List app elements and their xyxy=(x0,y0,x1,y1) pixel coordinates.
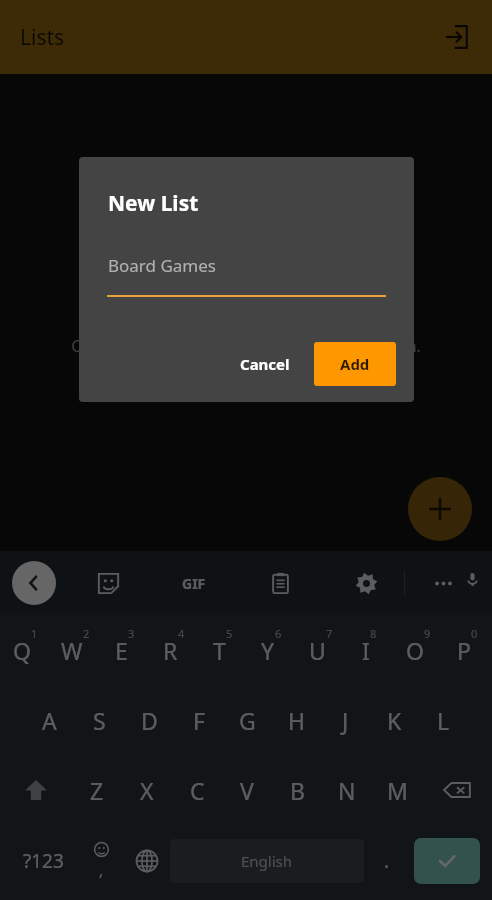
staticText: . xyxy=(384,848,390,874)
button[interactable]: G xyxy=(223,685,272,755)
staticText: E xyxy=(115,635,128,666)
button[interactable]: More options xyxy=(421,561,465,605)
staticText: Q xyxy=(13,635,31,666)
staticText: Y xyxy=(261,635,275,666)
button[interactable]: E xyxy=(100,615,149,685)
button[interactable]: T xyxy=(198,615,247,685)
staticText: C xyxy=(190,775,205,806)
button[interactable]: Enter xyxy=(414,838,480,884)
button[interactable]: Change language xyxy=(124,825,170,897)
staticText: 1 xyxy=(31,626,38,641)
staticText: D xyxy=(141,705,158,736)
staticText: P xyxy=(457,635,471,666)
button[interactable]: C xyxy=(172,755,222,825)
button[interactable]: O xyxy=(394,615,443,685)
button[interactable]: J xyxy=(321,685,370,755)
staticText: Z xyxy=(90,775,104,806)
button[interactable]: A xyxy=(24,685,74,755)
staticText: Board Games xyxy=(108,254,216,277)
button[interactable]: Z xyxy=(71,755,122,825)
button[interactable]: Q xyxy=(0,615,50,685)
staticText: English xyxy=(241,851,293,871)
staticText: 9 xyxy=(424,626,431,641)
staticText: Add xyxy=(340,354,370,374)
staticText: H xyxy=(288,705,306,736)
staticText: ?123 xyxy=(23,848,64,874)
staticText: T xyxy=(213,635,226,666)
button[interactable]: Clipboard xyxy=(258,561,302,605)
staticText: W xyxy=(61,635,83,666)
staticText: N xyxy=(338,775,356,806)
staticText: R xyxy=(163,635,178,666)
button[interactable]: L xyxy=(419,685,468,755)
button[interactable]: Sign out xyxy=(434,15,478,59)
staticText: , xyxy=(99,860,104,880)
staticText: GIF xyxy=(182,574,206,593)
staticText: V xyxy=(240,775,254,806)
button[interactable]: H xyxy=(272,685,321,755)
button[interactable]: I xyxy=(345,615,394,685)
staticText: 2 xyxy=(83,626,90,641)
button[interactable]: W xyxy=(50,615,100,685)
button[interactable]: Emoji xyxy=(78,825,124,897)
staticText: S xyxy=(93,705,106,736)
button[interactable]: Settings xyxy=(344,561,388,605)
staticText: J xyxy=(342,705,349,736)
button[interactable]: Backspace xyxy=(422,755,492,825)
staticText: 8 xyxy=(370,626,377,641)
button[interactable]: Add list xyxy=(408,477,472,541)
button[interactable]: K xyxy=(370,685,419,755)
staticText: X xyxy=(140,775,154,806)
button[interactable]: Add xyxy=(314,342,396,386)
staticText: 5 xyxy=(226,626,233,641)
button[interactable]: Cancel xyxy=(226,344,304,384)
staticText: A xyxy=(42,705,57,736)
staticText: U xyxy=(309,635,326,666)
staticText: 0 xyxy=(471,626,478,641)
button[interactable]: F xyxy=(174,685,223,755)
button[interactable]: P xyxy=(443,615,492,685)
button[interactable]: English xyxy=(170,839,364,883)
button[interactable]: Shift xyxy=(0,755,71,825)
staticText: 3 xyxy=(128,626,135,641)
button[interactable]: R xyxy=(149,615,198,685)
staticText: G xyxy=(239,705,256,736)
button[interactable]: V xyxy=(222,755,272,825)
button[interactable]: M xyxy=(372,755,422,825)
staticText: New List xyxy=(108,189,199,218)
staticText: L xyxy=(437,705,450,736)
button[interactable]: Voice input xyxy=(465,561,480,605)
button[interactable]: N xyxy=(322,755,372,825)
staticText: 6 xyxy=(275,626,282,641)
staticText: 7 xyxy=(326,626,333,641)
staticText: F xyxy=(193,705,205,736)
staticText: Create a list to get started with your c… xyxy=(71,335,421,357)
staticText: I xyxy=(362,635,370,666)
button[interactable]: GIF xyxy=(172,561,216,605)
button[interactable]: X xyxy=(122,755,172,825)
staticText: M xyxy=(387,775,408,806)
staticText: 4 xyxy=(178,626,185,641)
button[interactable]: B xyxy=(272,755,322,825)
button[interactable]: Back xyxy=(12,561,56,605)
button[interactable]: D xyxy=(124,685,174,755)
button[interactable]: ?123 xyxy=(8,825,78,897)
staticText: Cancel xyxy=(240,354,290,374)
button[interactable]: Stickers xyxy=(86,561,130,605)
staticText: K xyxy=(387,705,402,736)
staticText: Lists xyxy=(20,23,65,52)
button[interactable]: Y xyxy=(247,615,296,685)
staticText: O xyxy=(406,635,424,666)
button[interactable]: U xyxy=(296,615,345,685)
staticText: B xyxy=(290,775,305,806)
button[interactable]: S xyxy=(74,685,124,755)
